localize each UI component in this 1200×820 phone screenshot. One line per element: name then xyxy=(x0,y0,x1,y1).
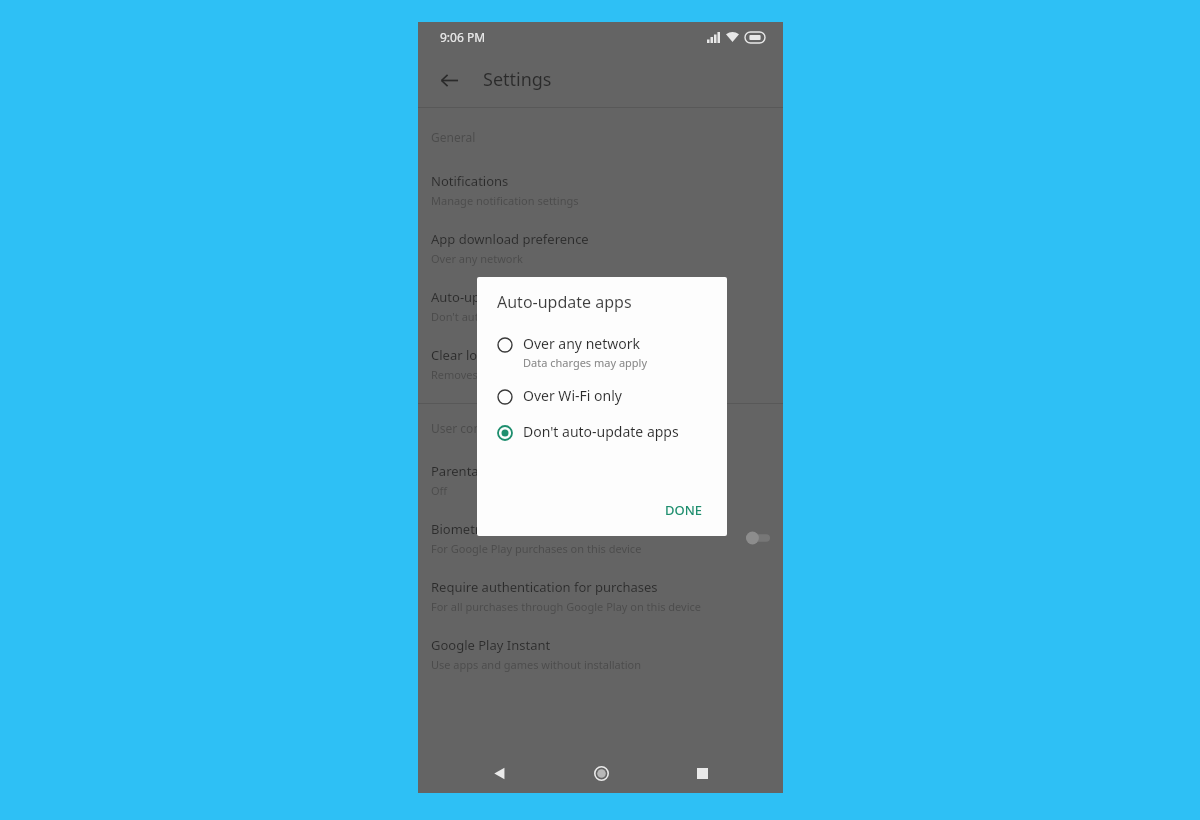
staticText: Don't auto-update apps xyxy=(523,422,679,441)
staticText: User controls xyxy=(431,420,506,436)
staticText: Use apps and games without installation xyxy=(431,657,642,672)
staticText: General xyxy=(431,129,476,145)
button[interactable]: Require authentication for purchases xyxy=(418,572,783,630)
staticText: Require authentication for purchases xyxy=(431,578,658,596)
staticText: Google Play Instant xyxy=(431,636,551,654)
button[interactable]: Clear local search history xyxy=(418,340,783,398)
staticText: 9:06 PM xyxy=(440,29,486,45)
staticText: Don't auto-update apps xyxy=(431,309,554,324)
staticText: Over any network xyxy=(523,334,640,353)
button[interactable]: Over Wi-Fi only xyxy=(477,384,727,407)
button[interactable]: Recents xyxy=(681,753,723,793)
button[interactable]: Don't auto-update apps xyxy=(477,420,727,443)
staticText: Biometric authentication xyxy=(431,520,583,538)
staticText: Auto-update apps xyxy=(497,291,632,313)
button[interactable]: Biometric authentication xyxy=(418,514,783,572)
staticText: Over Wi-Fi only xyxy=(523,386,622,405)
staticText: For all purchases through Google Play on… xyxy=(431,599,702,614)
staticText: Removes searches you have made on this d… xyxy=(431,367,682,382)
button[interactable]: Over any network xyxy=(477,332,727,372)
staticText: Auto-update apps xyxy=(431,288,541,306)
button[interactable]: Parental controls xyxy=(418,456,783,514)
button[interactable]: DONE xyxy=(655,494,713,526)
staticText: Manage notification settings xyxy=(431,193,579,208)
button[interactable]: Notifications xyxy=(418,166,783,224)
staticText: Notifications xyxy=(431,172,509,190)
staticText: Settings xyxy=(483,67,552,92)
button[interactable]: App download preference xyxy=(418,224,783,282)
staticText: Data charges may apply xyxy=(523,355,648,370)
button[interactable]: Google Play Instant xyxy=(418,630,783,688)
button[interactable]: Back xyxy=(478,753,520,793)
staticText: Off xyxy=(431,483,448,498)
button[interactable]: Home xyxy=(580,753,622,793)
button[interactable]: Auto-update apps xyxy=(418,282,783,340)
button[interactable]: Back xyxy=(429,60,469,100)
staticText: Clear local search history xyxy=(431,346,584,364)
staticText: DONE xyxy=(665,501,703,519)
staticText: App download preference xyxy=(431,230,589,248)
staticText: Over any network xyxy=(431,251,523,266)
staticText: Parental controls xyxy=(431,462,535,480)
staticText: For Google Play purchases on this device xyxy=(431,541,642,556)
